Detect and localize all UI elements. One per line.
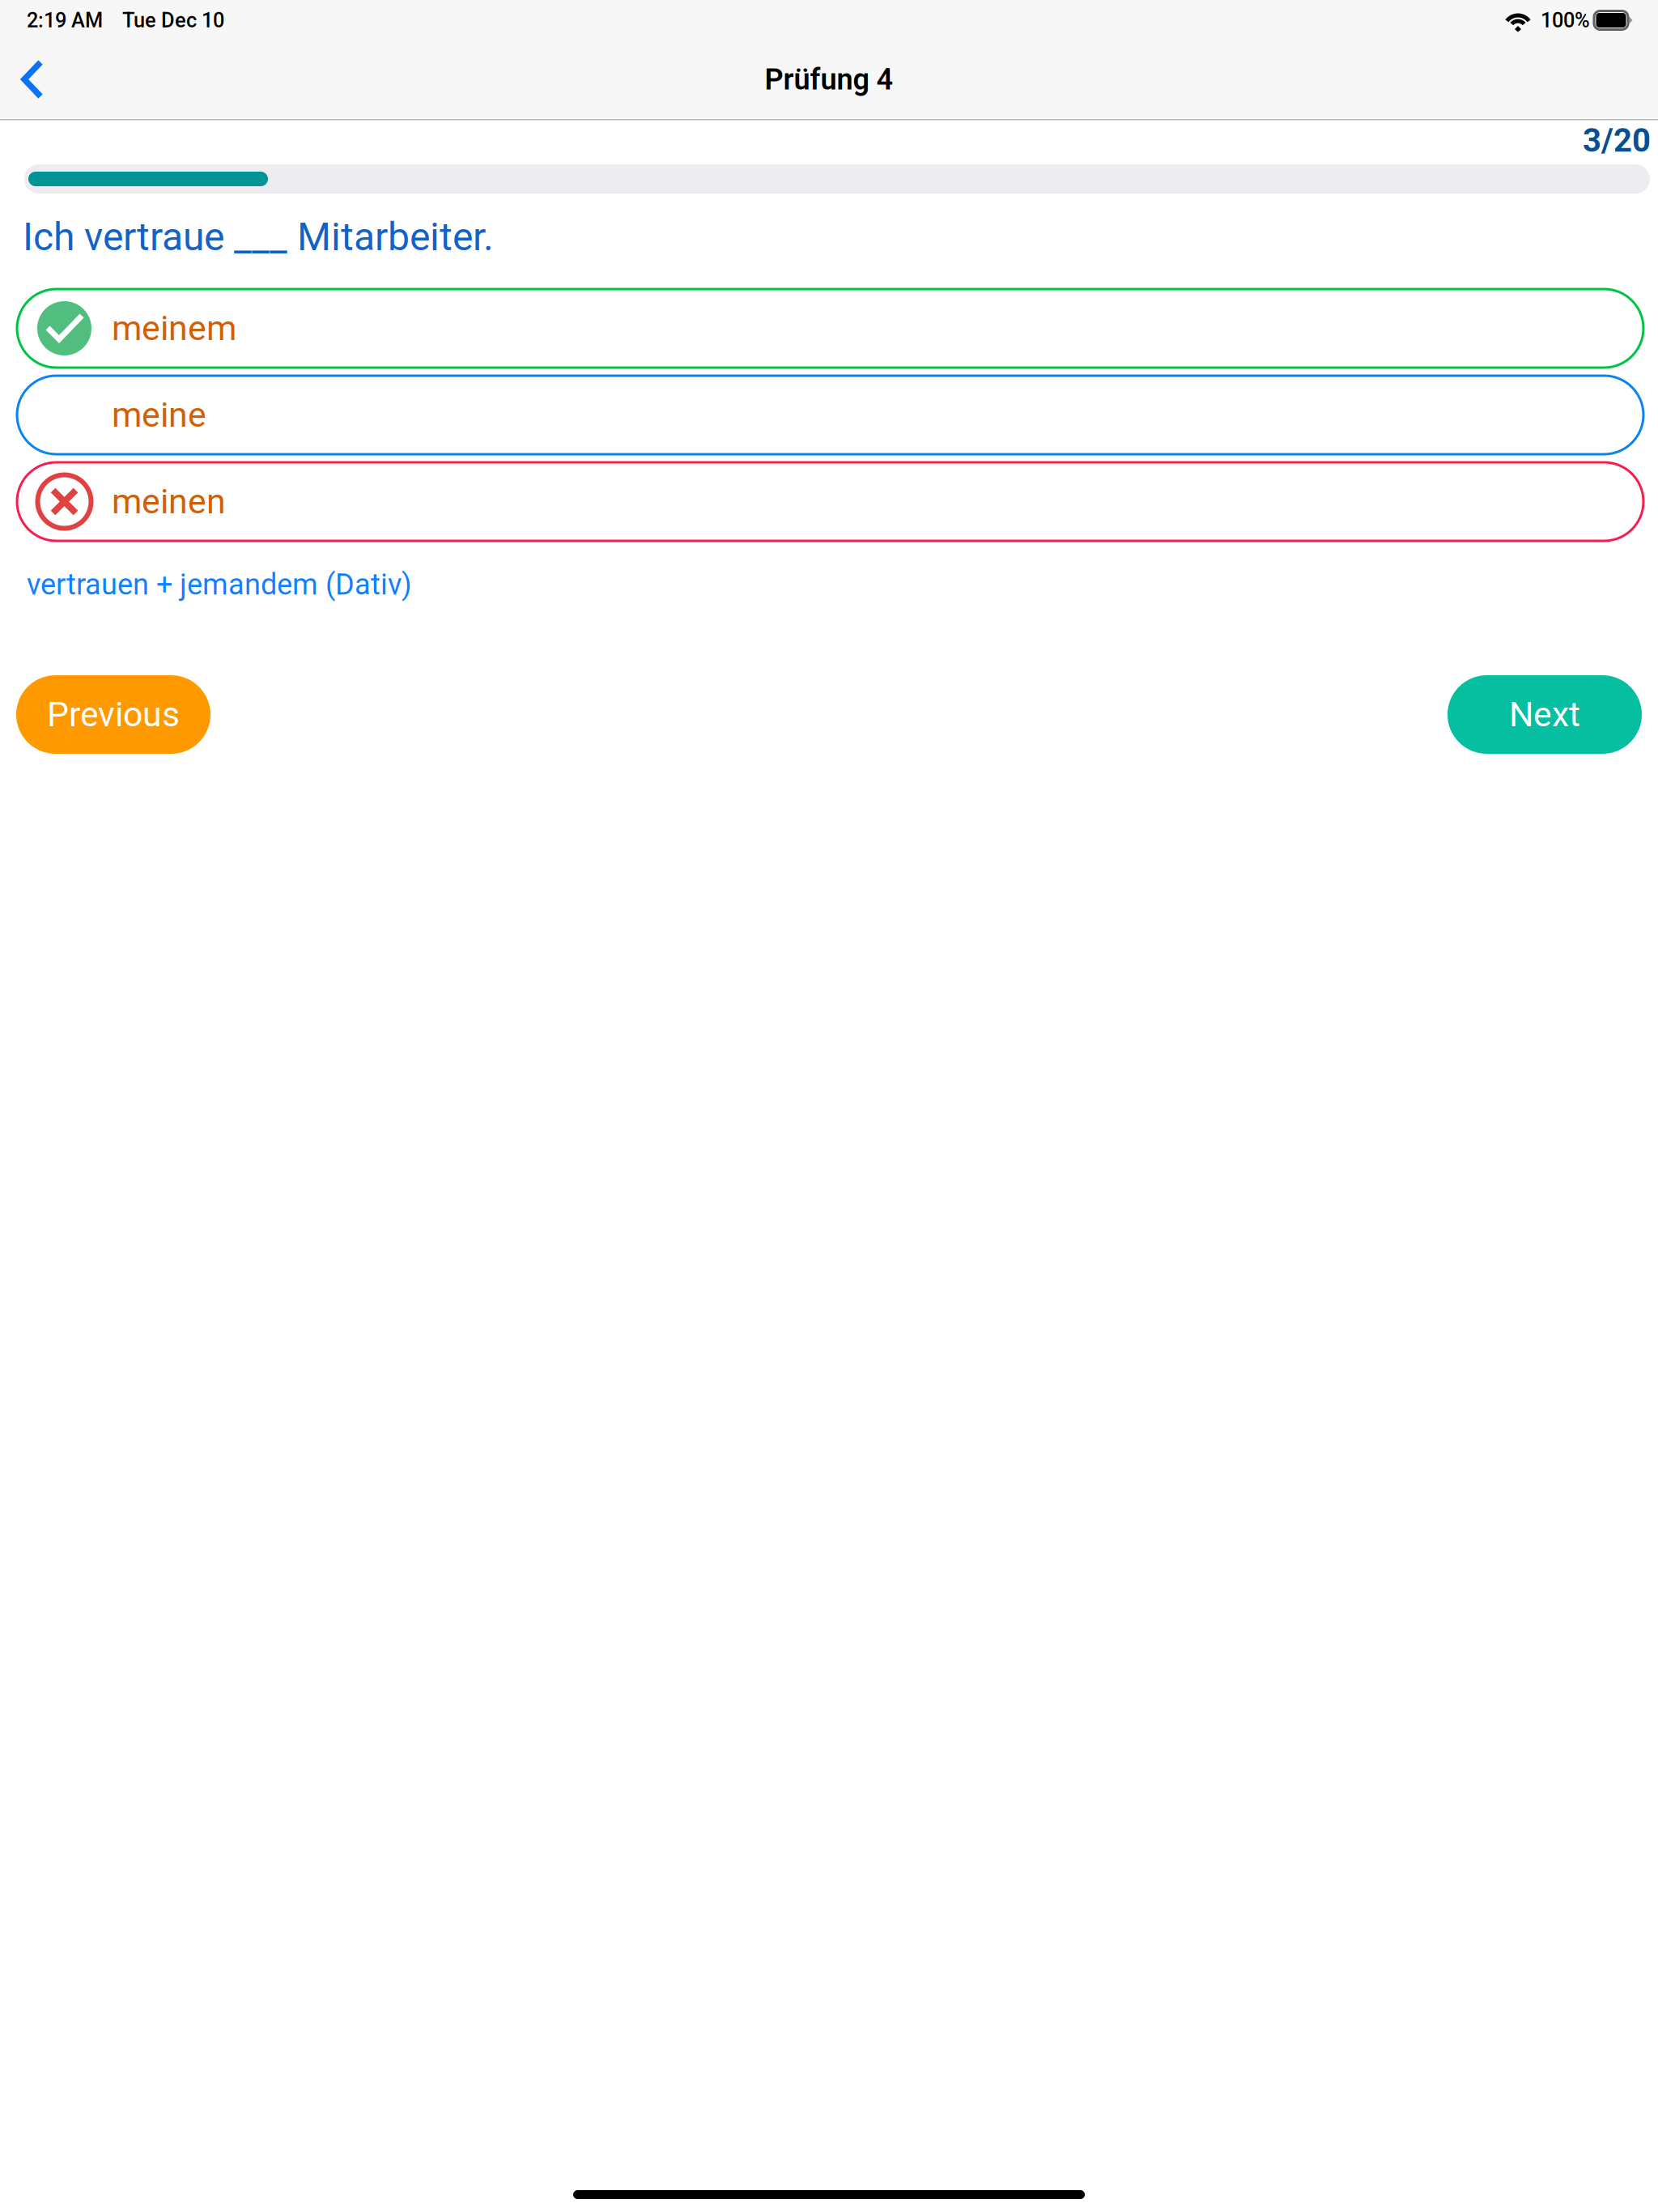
staticText: meine [112,395,206,435]
staticText: Tue Dec 10 [122,8,224,32]
staticText: Ich vertraue ___ Mitarbeiter. [23,214,494,260]
staticText: 3/20 [1583,122,1651,160]
staticText: Previous [47,694,180,735]
button[interactable]: Back [7,48,57,111]
button[interactable]: meine [17,376,1643,454]
staticText: Next [1509,694,1580,735]
staticText: vertrauen + jemandem (Dativ) [27,567,412,602]
button[interactable]: meinen [17,462,1643,541]
staticText: Prüfung 4 [765,62,893,97]
staticText: 100% [1541,8,1590,32]
staticText: 2:19 AM [27,8,103,32]
button[interactable]: meinem [17,289,1643,368]
staticText: meinem [112,308,236,349]
staticText: meinen [112,481,226,522]
button[interactable]: Next [1448,675,1642,754]
button[interactable]: Previous [16,675,210,754]
